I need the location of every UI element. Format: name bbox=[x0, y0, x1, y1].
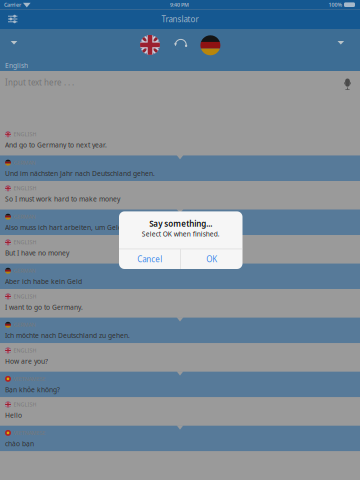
staticText: GERMAN bbox=[14, 321, 36, 328]
staticText: Und im nächsten Jahr nach Deutschland ge… bbox=[5, 169, 155, 178]
staticText: ENGLISH bbox=[14, 401, 37, 408]
button[interactable]: Target language options bbox=[331, 34, 350, 51]
button[interactable]: GERMAN bbox=[0, 209, 360, 235]
button[interactable]: VIETNAMESE bbox=[0, 372, 360, 397]
staticText: GERMAN bbox=[14, 213, 36, 220]
staticText: English bbox=[5, 61, 28, 70]
staticText: Bạn khỏe không? bbox=[5, 385, 60, 394]
button[interactable]: GERMAN bbox=[0, 263, 360, 289]
button[interactable]: English bbox=[138, 33, 162, 57]
button[interactable]: VIETNAMESE bbox=[0, 426, 360, 451]
staticText: OK bbox=[206, 254, 217, 264]
staticText: ENGLISH bbox=[14, 347, 37, 354]
button[interactable]: Menu bbox=[0, 10, 23, 29]
button[interactable]: Source language options bbox=[5, 34, 23, 51]
staticText: Ich möchte nach Deutschland zu gehen. bbox=[5, 331, 130, 340]
button[interactable]: ENGLISH bbox=[0, 235, 360, 263]
staticText: Aber ich habe kein Geld bbox=[5, 277, 82, 286]
staticText: ENGLISH bbox=[14, 239, 37, 246]
staticText: So I must work hard to make money bbox=[5, 194, 120, 203]
button[interactable]: ENGLISH bbox=[0, 397, 360, 426]
button[interactable]: Dictate bbox=[344, 71, 360, 90]
button[interactable]: Cancel bbox=[119, 249, 180, 269]
staticText: But I have no money bbox=[5, 249, 69, 257]
button[interactable]: GERMAN bbox=[0, 318, 360, 343]
staticText: How are you? bbox=[5, 357, 48, 366]
button[interactable]: ENGLISH bbox=[0, 181, 360, 209]
staticText: GERMAN bbox=[14, 159, 36, 166]
staticText: VIETNAMESE bbox=[14, 375, 46, 382]
button[interactable]: ENGLISH bbox=[0, 127, 360, 155]
staticText: VIETNAMESE bbox=[14, 429, 46, 436]
staticText: Say something... bbox=[149, 218, 212, 229]
button[interactable]: German bbox=[198, 33, 222, 57]
staticText: ENGLISH bbox=[14, 293, 37, 300]
staticText: ENGLISH bbox=[14, 185, 37, 192]
button[interactable]: Swap languages bbox=[171, 35, 191, 55]
button[interactable]: ENGLISH bbox=[0, 289, 360, 317]
staticText: Translator bbox=[161, 14, 198, 24]
staticText: Carrier bbox=[4, 1, 21, 8]
staticText: Select OK when finished. bbox=[142, 229, 220, 238]
staticText: GERMAN bbox=[14, 267, 36, 274]
staticText: Also muss ich hart arbeiten, um Geld zu … bbox=[5, 223, 167, 232]
staticText: Hello bbox=[5, 411, 22, 420]
staticText: And go to Germany to next year. bbox=[5, 140, 107, 149]
staticText: 100% bbox=[328, 1, 342, 8]
staticText: chào bạn bbox=[5, 439, 34, 448]
staticText: ENGLISH bbox=[14, 131, 37, 138]
staticText: Input text here . . . bbox=[5, 77, 74, 88]
button[interactable]: GERMAN bbox=[0, 155, 360, 181]
staticText: Cancel bbox=[137, 254, 162, 264]
button[interactable]: ENGLISH bbox=[0, 343, 360, 372]
staticText: I want to go to Germany. bbox=[5, 303, 83, 311]
staticText: 9:40 PM bbox=[170, 1, 189, 8]
button[interactable]: OK bbox=[181, 249, 242, 269]
